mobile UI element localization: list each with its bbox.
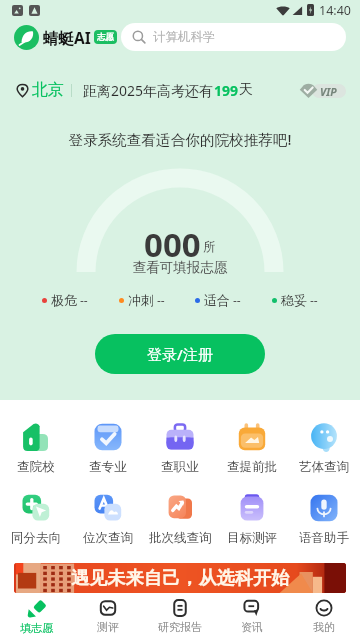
button[interactable]: 查提前批 <box>216 422 288 475</box>
button[interactable]: 艺体查询 <box>288 422 360 475</box>
staticText: 同分去向 <box>11 530 61 546</box>
staticText: 北京 <box>32 80 64 100</box>
staticText: -- <box>310 292 318 308</box>
button[interactable]: 遇见未来自己，从选科开始 <box>14 563 346 593</box>
staticText: 批次线查询 <box>149 530 212 546</box>
button[interactable]: 同分去向 <box>0 493 72 546</box>
staticText: 登录系统查看适合你的院校推荐吧! <box>0 129 360 149</box>
staticText: VIP <box>320 85 337 99</box>
button[interactable]: 填志愿 <box>0 596 72 635</box>
staticText: 测评 <box>97 620 119 634</box>
button[interactable]: 资讯 <box>216 596 288 634</box>
staticText: 天 <box>239 81 253 99</box>
button[interactable]: 测评 <box>72 596 144 634</box>
staticText: 14:40 <box>319 2 351 19</box>
staticText: 查职业 <box>161 459 199 475</box>
staticText: 登录/注册 <box>147 344 213 364</box>
staticText: 我的 <box>313 620 335 634</box>
staticText: 距离2025年高考还有 <box>83 81 214 100</box>
staticText: 适合 <box>204 292 230 308</box>
staticText: 填志愿 <box>20 621 53 635</box>
staticText: 查看可填报志愿 <box>0 259 360 276</box>
staticText: 稳妥 <box>281 292 307 308</box>
staticText: 目标测评 <box>227 530 277 546</box>
staticText: 查专业 <box>89 459 127 475</box>
button[interactable]: VIP <box>299 81 346 100</box>
staticText: -- <box>80 292 88 308</box>
button[interactable]: 研究报告 <box>144 596 216 634</box>
staticText: 199 <box>214 81 239 100</box>
button[interactable]: 目标测评 <box>216 493 288 546</box>
staticText: 计算机科学 <box>153 29 216 45</box>
button[interactable]: 批次线查询 <box>144 493 216 546</box>
button[interactable]: 查院校 <box>0 422 72 475</box>
staticText: 极危 <box>51 292 77 308</box>
staticText: 志愿 <box>97 32 114 43</box>
button[interactable]: 查职业 <box>144 422 216 475</box>
staticText: 语音助手 <box>299 530 349 546</box>
staticText: 查院校 <box>17 459 55 475</box>
staticText: 冲刺 <box>128 292 154 308</box>
staticText: -- <box>157 292 165 308</box>
button[interactable]: 登录/注册 <box>95 334 265 374</box>
staticText: 资讯 <box>241 620 263 634</box>
button[interactable]: 语音助手 <box>288 493 360 546</box>
button[interactable]: 我的 <box>288 596 360 634</box>
staticText: 艺体查询 <box>299 459 349 475</box>
staticText: 位次查询 <box>83 530 133 546</box>
button[interactable]: 查专业 <box>72 422 144 475</box>
staticText: 所 <box>203 239 216 255</box>
staticText: 研究报告 <box>158 620 202 634</box>
staticText: -- <box>233 292 241 308</box>
button[interactable]: 位次查询 <box>72 493 144 546</box>
staticText: 查提前批 <box>227 459 277 475</box>
button[interactable]: 计算机科学 <box>121 23 346 51</box>
staticText: 000 <box>144 222 201 267</box>
staticText: 遇见未来自己，从选科开始 <box>71 567 290 590</box>
staticText: 蜻蜓AI <box>43 27 91 48</box>
